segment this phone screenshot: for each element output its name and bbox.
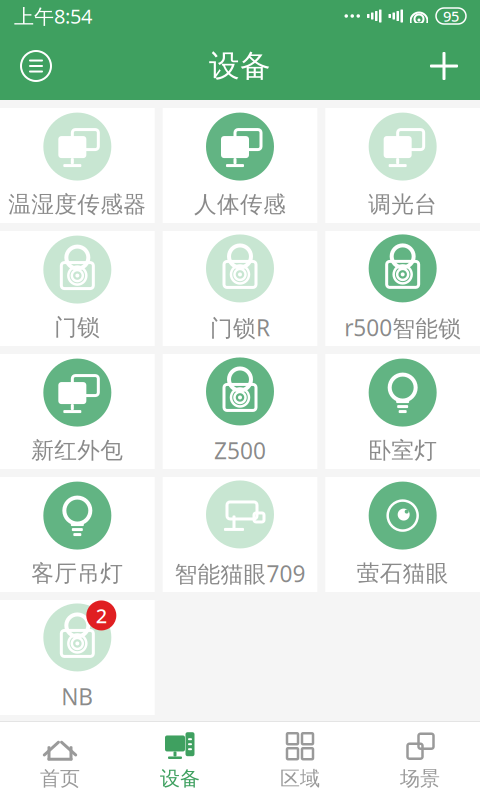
staticText: 卧室灯 bbox=[368, 437, 437, 464]
button[interactable]: 萤石猫眼 bbox=[325, 477, 480, 592]
staticText: 门锁R bbox=[210, 312, 270, 342]
staticText: 首页 bbox=[40, 766, 80, 791]
staticText: 设备 bbox=[209, 47, 271, 85]
staticText: 新红外包 bbox=[31, 437, 123, 464]
staticText: 门锁 bbox=[54, 314, 100, 341]
staticText: 场景 bbox=[400, 766, 440, 791]
staticText: 调光台 bbox=[368, 191, 437, 218]
button[interactable]: 温湿度传感器 bbox=[0, 108, 155, 223]
button[interactable]: Z500 bbox=[163, 354, 317, 469]
staticText: 2 bbox=[96, 602, 107, 629]
staticText: 设备 bbox=[160, 766, 200, 791]
staticText: 萤石猫眼 bbox=[357, 560, 449, 587]
staticText: 区域 bbox=[280, 766, 320, 791]
button[interactable]: 区域 bbox=[240, 723, 360, 799]
staticText: 智能猫眼709 bbox=[174, 558, 305, 588]
button[interactable]: r500智能锁 bbox=[325, 231, 480, 346]
button[interactable]: 门锁R bbox=[163, 231, 317, 346]
button[interactable]: 人体传感 bbox=[163, 108, 317, 223]
button[interactable]: Menu bbox=[12, 42, 60, 90]
button[interactable]: Add device bbox=[420, 42, 468, 90]
staticText: NB bbox=[61, 681, 93, 711]
staticText: 人体传感 bbox=[194, 191, 286, 218]
staticText: 温湿度传感器 bbox=[8, 191, 146, 218]
staticText: 客厅吊灯 bbox=[31, 560, 123, 587]
button[interactable]: 设备 bbox=[120, 723, 240, 799]
staticText: 95 bbox=[443, 6, 459, 26]
button[interactable]: 智能猫眼709 bbox=[163, 477, 317, 592]
staticText: Z500 bbox=[214, 435, 266, 465]
button[interactable]: 卧室灯 bbox=[325, 354, 480, 469]
button[interactable]: 2 bbox=[0, 600, 155, 715]
button[interactable]: 首页 bbox=[0, 723, 120, 799]
staticText: 上午8:54 bbox=[14, 3, 92, 29]
button[interactable]: 门锁 bbox=[0, 231, 155, 346]
button[interactable]: 场景 bbox=[360, 723, 480, 799]
button[interactable]: 新红外包 bbox=[0, 354, 155, 469]
button[interactable]: 客厅吊灯 bbox=[0, 477, 155, 592]
button[interactable]: 调光台 bbox=[325, 108, 480, 223]
staticText: r500智能锁 bbox=[344, 312, 461, 343]
